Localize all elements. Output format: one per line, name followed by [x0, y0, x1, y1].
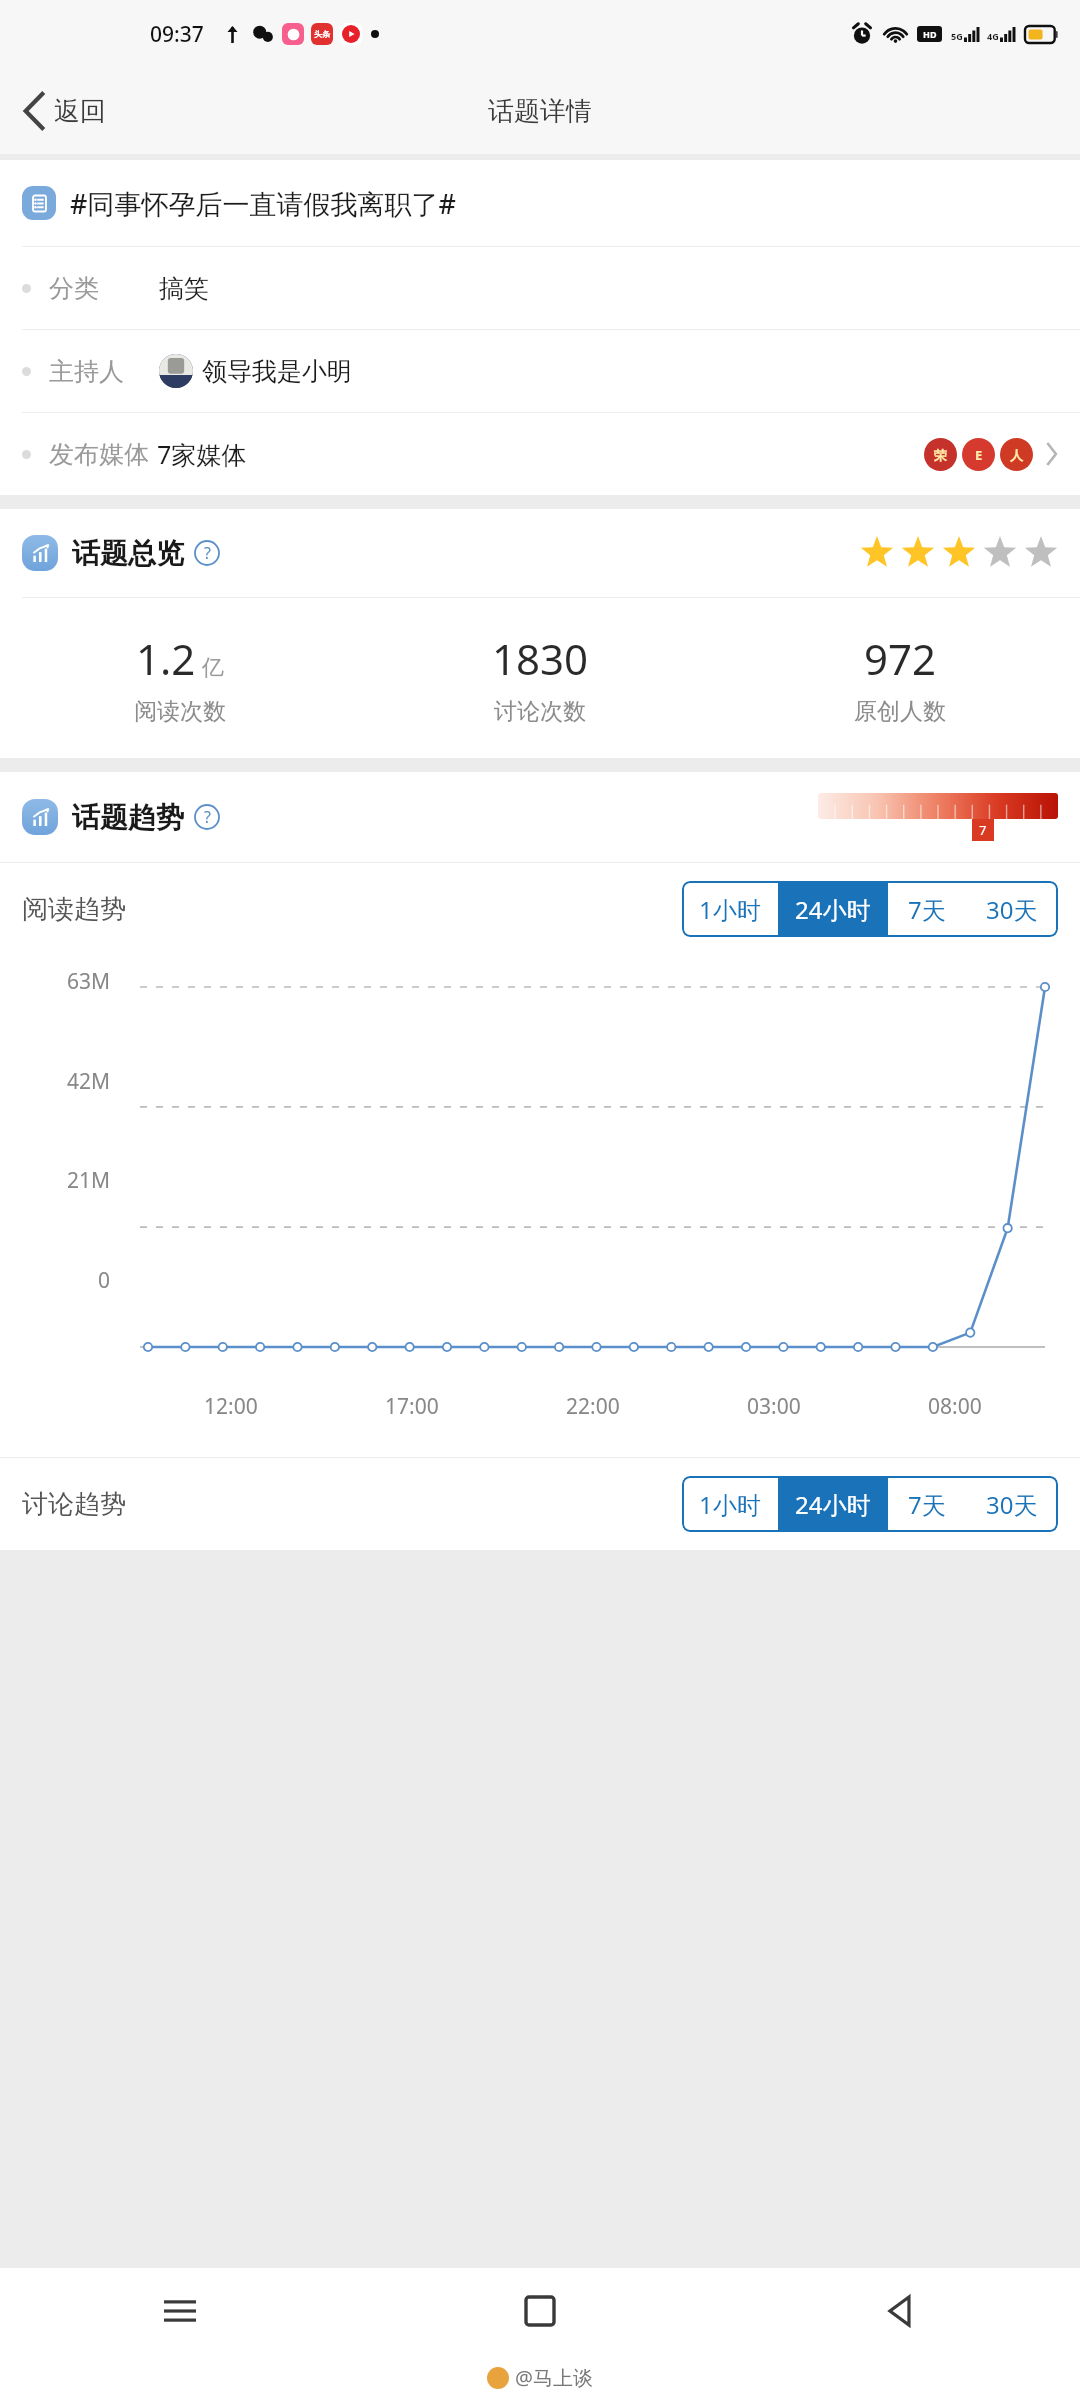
- staticText: 12:00: [204, 1392, 258, 1421]
- staticText: 话题总览: [72, 536, 184, 571]
- button[interactable]: 主持人: [22, 330, 1058, 412]
- staticText: 21M: [30, 1166, 110, 1195]
- staticText: 1小时: [699, 1488, 761, 1521]
- button[interactable]: 分类: [22, 247, 1058, 329]
- button[interactable]: 帮助: [194, 804, 220, 830]
- button[interactable]: 发布媒体: [22, 413, 1058, 495]
- staticText: E: [975, 446, 983, 464]
- button[interactable]: 7天: [888, 1476, 966, 1532]
- button[interactable]: 主屏幕: [360, 2268, 720, 2354]
- staticText: 30天: [986, 893, 1038, 926]
- staticText: #同事怀孕后一直请假我离职了#: [70, 185, 456, 222]
- button[interactable]: 返回: [22, 68, 106, 154]
- staticText: 话题详情: [488, 95, 592, 128]
- staticText: 讨论次数: [494, 697, 586, 726]
- staticText: 24小时: [795, 893, 871, 926]
- staticText: 主持人: [49, 356, 124, 387]
- staticText: 63M: [30, 967, 110, 996]
- staticText: 5G: [951, 30, 963, 42]
- staticText: 返回: [54, 95, 106, 128]
- staticText: ?: [204, 806, 211, 828]
- staticText: 讨论趋势: [22, 1488, 126, 1521]
- button[interactable]: 7天: [888, 881, 966, 937]
- staticText: 03:00: [747, 1392, 801, 1421]
- staticText: 人: [1010, 447, 1023, 463]
- staticText: 话题趋势: [72, 800, 184, 835]
- staticText: 42M: [30, 1067, 110, 1096]
- staticText: 1小时: [699, 893, 761, 926]
- button[interactable]: 最近任务: [0, 2268, 360, 2354]
- staticText: 17:00: [385, 1392, 439, 1421]
- staticText: 1.2: [136, 630, 196, 687]
- staticText: ?: [204, 542, 211, 564]
- staticText: 荣: [934, 447, 947, 463]
- staticText: 亿: [202, 654, 224, 682]
- staticText: 0: [30, 1266, 110, 1295]
- button[interactable]: 返回: [720, 2268, 1080, 2354]
- staticText: 7天: [908, 1488, 946, 1521]
- staticText: 7天: [908, 893, 946, 926]
- staticText: 30天: [986, 1488, 1038, 1521]
- staticText: 22:00: [566, 1392, 620, 1421]
- staticText: 阅读趋势: [22, 893, 126, 926]
- staticText: 阅读次数: [134, 697, 226, 726]
- staticText: 发布媒体: [49, 439, 149, 470]
- staticText: 领导我是小明: [202, 356, 352, 387]
- staticText: 1830: [492, 630, 589, 687]
- staticText: 24小时: [795, 1488, 871, 1521]
- button[interactable]: 1小时: [682, 1476, 778, 1532]
- button[interactable]: 24小时: [778, 1476, 888, 1532]
- staticText: 搞笑: [159, 273, 209, 304]
- button[interactable]: 1小时: [682, 881, 778, 937]
- staticText: 972: [864, 630, 937, 687]
- staticText: 7: [979, 821, 987, 839]
- staticText: 09:37: [150, 20, 204, 49]
- staticText: 7家媒体: [157, 437, 247, 471]
- staticText: 08:00: [928, 1392, 982, 1421]
- staticText: 分类: [49, 273, 99, 304]
- button[interactable]: #同事怀孕后一直请假我离职了#: [22, 160, 1058, 246]
- button[interactable]: 帮助: [194, 540, 220, 566]
- button[interactable]: 24小时: [778, 881, 888, 937]
- staticText: 头条: [314, 29, 330, 39]
- staticText: 原创人数: [854, 697, 946, 726]
- staticText: 4G: [987, 30, 999, 42]
- staticText: @马上谈: [515, 2364, 593, 2391]
- button[interactable]: 30天: [966, 1476, 1058, 1532]
- button[interactable]: 话题总览: [22, 509, 1058, 597]
- button[interactable]: 话题趋势: [22, 772, 1058, 862]
- staticText: HD: [923, 28, 937, 40]
- button[interactable]: 30天: [966, 881, 1058, 937]
